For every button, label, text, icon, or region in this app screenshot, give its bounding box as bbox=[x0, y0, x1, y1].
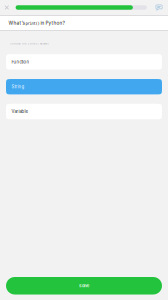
staticText: Choose the correct answer bbox=[10, 42, 49, 45]
staticText: What's print() in Python? bbox=[8, 20, 64, 26]
staticText: Solve bbox=[79, 283, 89, 288]
staticText: Variable bbox=[11, 109, 28, 114]
button[interactable]: String bbox=[6, 79, 162, 94]
button[interactable]: Solve bbox=[6, 277, 162, 294]
staticText: String bbox=[11, 84, 24, 89]
button[interactable]: Close bbox=[0, 0, 14, 15]
button[interactable]: Function bbox=[6, 54, 162, 70]
button[interactable]: Comments bbox=[153, 0, 165, 15]
staticText: Function bbox=[11, 59, 29, 64]
button[interactable]: Variable bbox=[6, 104, 162, 119]
